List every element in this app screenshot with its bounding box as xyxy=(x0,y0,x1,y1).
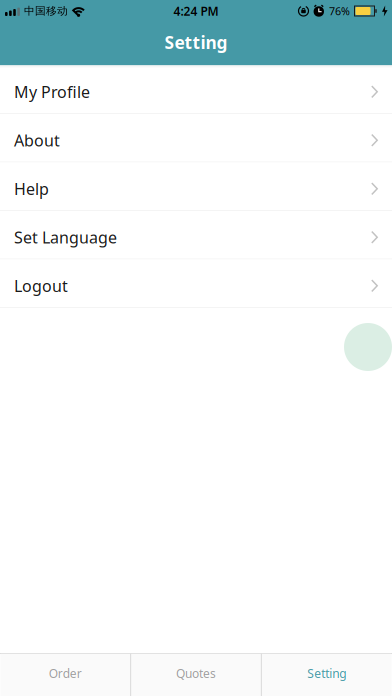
staticText: About xyxy=(14,130,60,151)
button[interactable]: Set Language xyxy=(0,211,392,259)
button[interactable]: My Profile xyxy=(0,65,392,114)
button[interactable]: About xyxy=(0,114,392,162)
staticText: 4:24 PM xyxy=(173,3,218,19)
staticText: Logout xyxy=(14,275,68,296)
button[interactable]: Order xyxy=(0,654,130,696)
staticText: Order xyxy=(49,665,82,681)
staticText: Setting xyxy=(307,665,346,681)
button[interactable]: Logout xyxy=(0,259,392,308)
staticText: 中国移动 xyxy=(24,4,68,17)
staticText: My Profile xyxy=(14,81,90,102)
button[interactable]: Quotes xyxy=(131,654,261,696)
staticText: 76% xyxy=(329,4,350,18)
button[interactable]: Help xyxy=(0,162,392,211)
staticText: Quotes xyxy=(176,665,216,681)
staticText: Help xyxy=(14,178,49,199)
button[interactable]: Setting xyxy=(262,654,392,696)
staticText: Setting xyxy=(164,31,227,54)
staticText: Set Language xyxy=(14,227,117,248)
